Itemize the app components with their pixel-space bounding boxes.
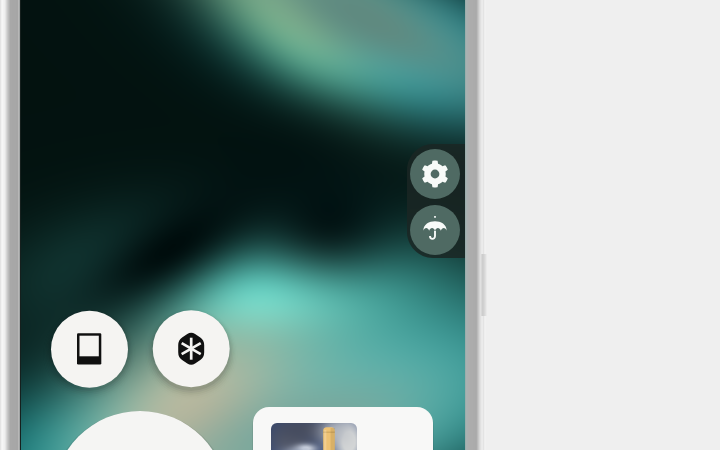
button[interactable]: Gallery [152, 310, 230, 388]
button[interactable]: Photos [50, 310, 128, 388]
button[interactable]: Settings [410, 149, 460, 199]
button[interactable]: Weather [410, 205, 460, 255]
